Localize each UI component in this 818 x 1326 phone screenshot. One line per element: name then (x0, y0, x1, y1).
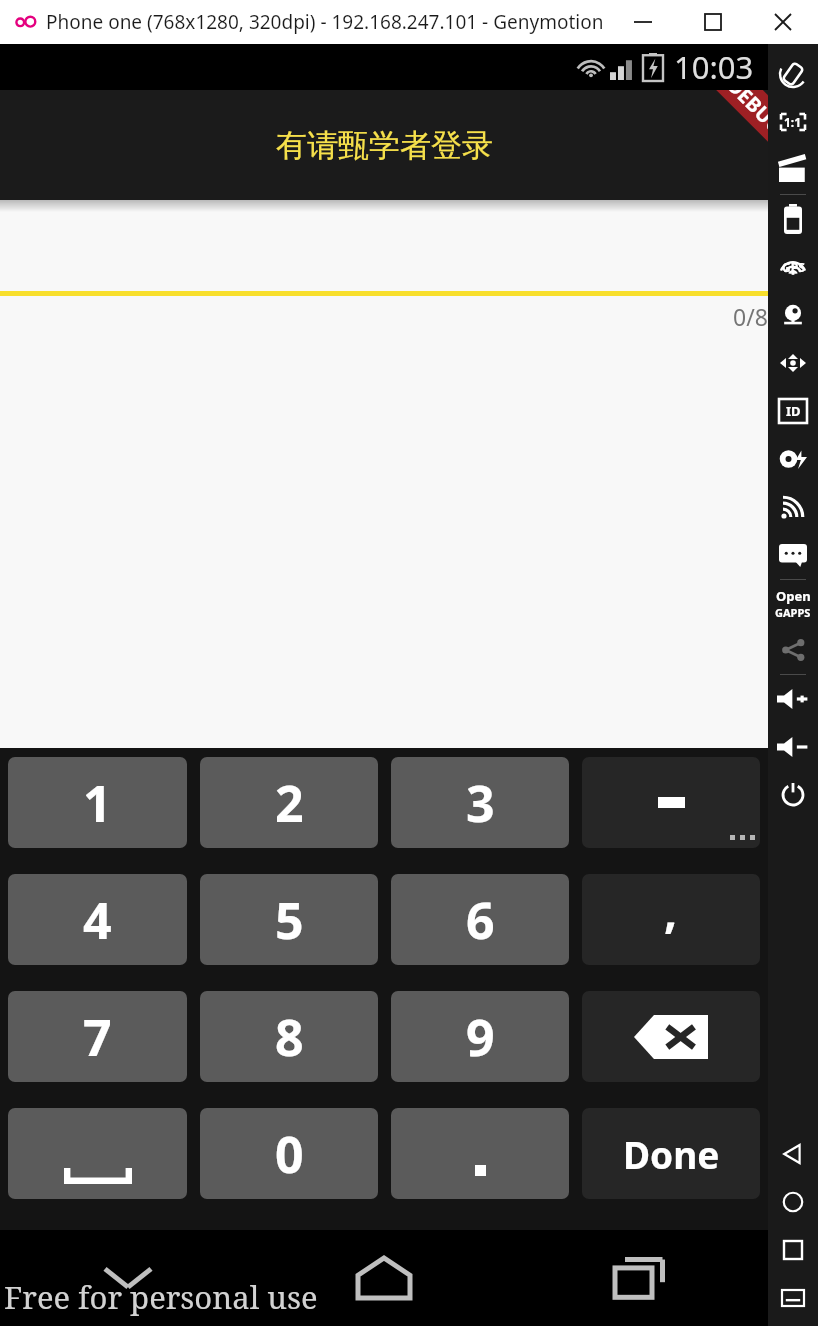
button[interactable]: 2 (200, 757, 378, 848)
button[interactable]: Home (256, 1230, 512, 1326)
button[interactable]: 5 (200, 874, 378, 965)
button[interactable]: - (582, 757, 760, 848)
staticText: Free for personal use (4, 1276, 318, 1318)
staticText: DEBUG (721, 90, 768, 140)
button[interactable]: Camera (768, 291, 818, 339)
staticText: 8 (275, 1003, 304, 1071)
staticText: ID (786, 402, 801, 420)
button[interactable]: Volume down (768, 723, 818, 771)
staticText: 4 (83, 886, 112, 954)
button[interactable]: 4 (8, 874, 187, 965)
button[interactable]: Identifiers (768, 387, 818, 435)
staticText: 1:1 (784, 114, 802, 130)
button[interactable]: Minimize (608, 0, 678, 44)
button[interactable]: Close (748, 0, 818, 44)
button[interactable]: Done (582, 1108, 760, 1199)
button[interactable]: Backspace (582, 991, 760, 1082)
button[interactable]: Actual size (768, 98, 818, 146)
button[interactable]: Menu (768, 1274, 818, 1322)
button[interactable]: Back (768, 1130, 818, 1178)
button[interactable]: 7 (8, 991, 187, 1082)
button[interactable]: Maximize (678, 0, 748, 44)
button[interactable]: Disk IO (768, 435, 818, 483)
button[interactable]: 9 (391, 991, 569, 1082)
button[interactable]: Screen record (768, 146, 818, 194)
staticText: 3 (466, 769, 495, 837)
staticText: 9 (466, 1003, 495, 1071)
staticText: 1 (83, 769, 112, 837)
staticText: 7 (83, 1003, 112, 1071)
staticText: , (664, 879, 678, 942)
button[interactable]: D-pad (768, 339, 818, 387)
staticText: Phone one (768x1280, 320dpi) - 192.168.2… (46, 9, 604, 35)
staticText: 0 (275, 1120, 304, 1188)
button[interactable]: 8 (200, 991, 378, 1082)
staticText: 6 (466, 886, 495, 954)
button[interactable]: GPS (768, 243, 818, 291)
button[interactable]: SMS (768, 531, 818, 579)
button[interactable]: Power (768, 771, 818, 819)
button[interactable]: Space (8, 1108, 187, 1199)
button[interactable]: . (391, 1108, 569, 1199)
staticText: 有请甄学者登录 (276, 126, 493, 165)
staticText: Open (776, 587, 811, 605)
button[interactable]: Battery (768, 195, 818, 243)
staticText: Done (623, 1129, 720, 1179)
button[interactable]: Volume up (768, 675, 818, 723)
button[interactable]: Network (768, 483, 818, 531)
button[interactable]: Overview (768, 1226, 818, 1274)
button[interactable]: Home (768, 1178, 818, 1226)
staticText: 10:03 (674, 46, 754, 88)
staticText: 2 (275, 769, 304, 837)
button[interactable]: 6 (391, 874, 569, 965)
button[interactable]: Hide keyboard (0, 1230, 256, 1326)
button[interactable]: Open GAPPS (768, 580, 818, 626)
button[interactable]: , (582, 874, 760, 965)
staticText: GAPPS (775, 605, 811, 620)
button[interactable]: Share (768, 626, 818, 674)
staticText: GPS (782, 259, 805, 275)
button[interactable]: Recent apps (512, 1230, 768, 1326)
button[interactable]: 1 (8, 757, 187, 848)
staticText: 5 (275, 886, 304, 954)
staticText: 0/8 (733, 301, 768, 332)
button[interactable]: 3 (391, 757, 569, 848)
button[interactable]: 0 (200, 1108, 378, 1199)
button[interactable]: Rotate (768, 50, 818, 98)
